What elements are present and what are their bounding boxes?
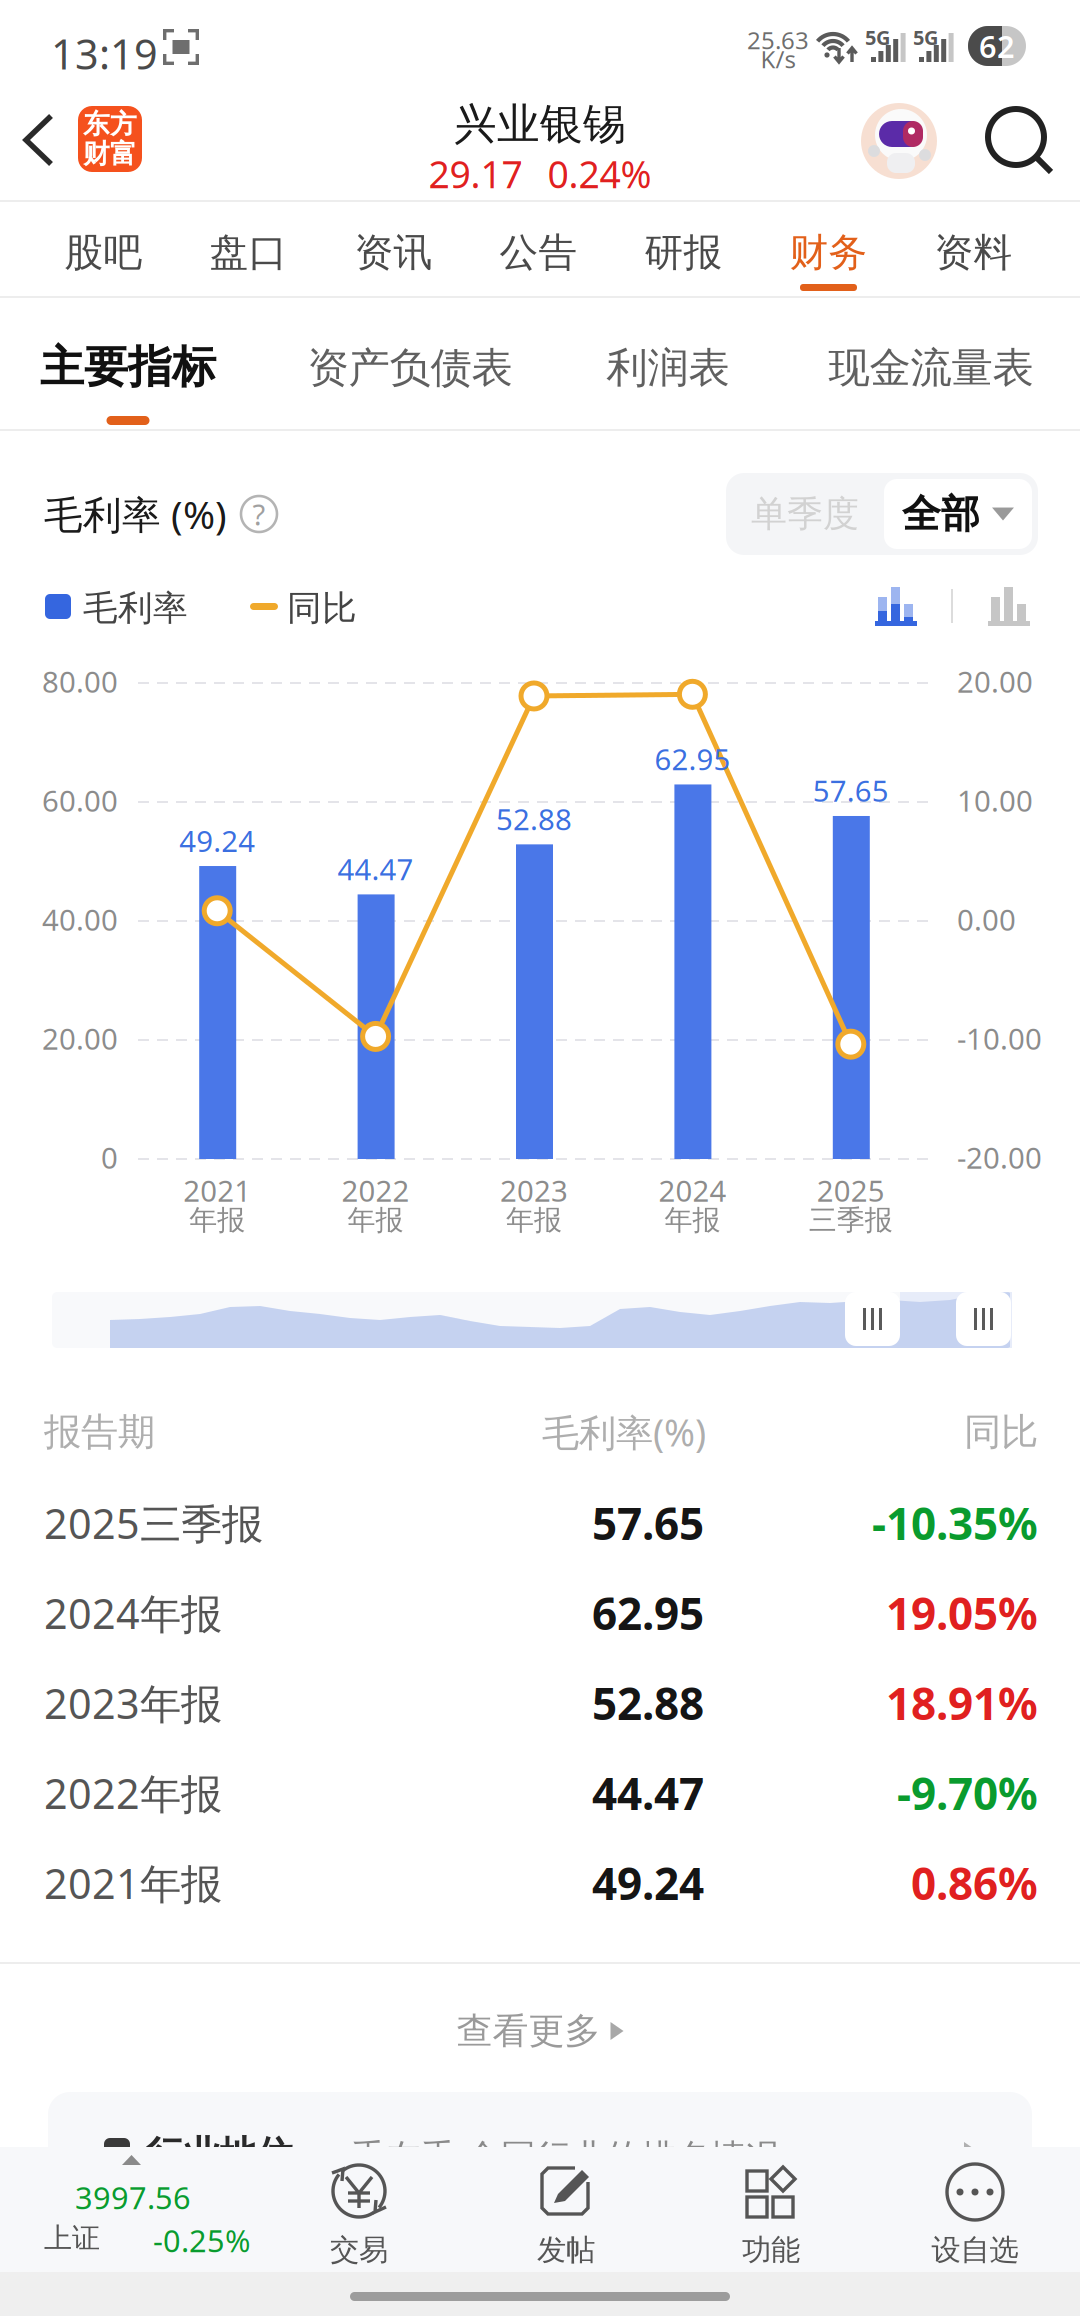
staticText: -20.00 [957, 1138, 1042, 1177]
staticText: 25.63 [747, 24, 809, 56]
staticText: 20.00 [957, 662, 1033, 701]
button[interactable]: Stacked bars [875, 585, 917, 627]
button[interactable]: East Money home [78, 106, 142, 172]
staticText: 10.00 [957, 781, 1033, 820]
staticText: 盘口 [209, 229, 287, 276]
staticText: 13:19 [51, 26, 158, 81]
staticText: 52.88 [496, 799, 572, 838]
button[interactable]: 设自选 [880, 2147, 1070, 2272]
button[interactable]: 全部 [884, 479, 1032, 549]
staticText: 57.65 [813, 771, 889, 810]
staticText: 功能 [742, 2232, 800, 2268]
staticText: 资产负债表 [307, 343, 512, 393]
button[interactable]: 主要指标 [13, 298, 243, 429]
staticText: 年报 [506, 1203, 562, 1237]
staticText: 行业地位 [146, 2132, 294, 2178]
staticText: 设自选 [931, 2232, 1018, 2268]
button[interactable]: AI assistant [853, 95, 945, 187]
staticText: 57.65 [592, 1494, 704, 1552]
staticText: 发帖 [537, 2232, 595, 2268]
button[interactable]: Range start [845, 1292, 900, 1346]
staticText: 62.95 [592, 1584, 704, 1642]
staticText: 29.17 [428, 149, 522, 199]
staticText: 上证 [44, 2221, 100, 2255]
button[interactable]: Search [975, 96, 1067, 188]
button[interactable]: 利润表 [583, 321, 753, 415]
staticText: 东方 [83, 108, 137, 140]
staticText: 80.00 [42, 662, 118, 701]
staticText: 全部 [902, 490, 980, 538]
staticText: K/s [760, 43, 795, 75]
staticText: 2024年报 [44, 1586, 222, 1640]
button[interactable]: 查看更多 [0, 1976, 1080, 2086]
staticText: 资讯 [354, 229, 432, 276]
button[interactable]: 财务 [756, 202, 901, 297]
button[interactable]: 资讯 [321, 202, 466, 297]
staticText: 年报 [664, 1203, 720, 1237]
staticText: 交易 [330, 2232, 388, 2268]
staticText: 报告期 [44, 1409, 155, 1455]
staticText: 主要指标 [40, 340, 216, 394]
staticText: 2023年报 [44, 1676, 222, 1730]
staticText: 0 [101, 1138, 118, 1177]
button[interactable]: 资料 [901, 202, 1046, 297]
staticText: 52.88 [592, 1674, 704, 1732]
staticText: 现金流量表 [828, 343, 1033, 393]
staticText: 5G [913, 24, 938, 51]
button[interactable]: 现金流量表 [801, 321, 1061, 415]
staticText: 三季报 [809, 1203, 893, 1237]
button[interactable]: 发帖 [471, 2147, 661, 2272]
button[interactable]: Back [0, 88, 78, 192]
staticText: 2021年报 [44, 1856, 222, 1910]
staticText: 0.86% [911, 1854, 1038, 1912]
staticText: 5G [865, 24, 890, 51]
button[interactable]: 公告 [466, 202, 611, 297]
button[interactable]: Range end [956, 1292, 1011, 1346]
staticText: -10.00 [957, 1019, 1042, 1058]
staticText: 同比 [287, 587, 357, 630]
staticText: 单季度 [751, 492, 859, 536]
staticText: 年报 [189, 1203, 245, 1237]
staticText: 3997.56 [75, 2177, 191, 2218]
staticText: 2023 [500, 1171, 568, 1210]
staticText: 股吧 [64, 229, 142, 276]
staticText: 2022 [342, 1171, 410, 1210]
staticText: 2025三季报 [44, 1496, 263, 1550]
staticText: 毛利率 [83, 587, 188, 630]
staticText: 公告 [499, 229, 577, 276]
staticText: 利润表 [606, 343, 729, 393]
button[interactable]: 交易 [264, 2147, 454, 2272]
staticText: 62 [979, 26, 1015, 66]
staticText: 18.91% [886, 1674, 1038, 1732]
staticText: -0.25% [153, 2220, 250, 2261]
staticText: 2024 [658, 1171, 726, 1210]
button[interactable]: 盘口 [176, 202, 321, 297]
staticText: 年报 [348, 1203, 404, 1237]
button[interactable]: 3997.56 [0, 2147, 268, 2271]
staticText: 44.47 [338, 849, 414, 888]
staticText: 44.47 [592, 1764, 704, 1822]
staticText: 毛利率 (%) [44, 488, 227, 540]
staticText: 0.24% [547, 149, 651, 199]
staticText: 财务 [789, 229, 867, 276]
staticText: 40.00 [42, 900, 118, 939]
button[interactable]: 功能 [676, 2147, 866, 2272]
button[interactable]: 单季度 [726, 473, 884, 555]
staticText: 0.00 [957, 900, 1016, 939]
staticText: 查看更多 [456, 2009, 600, 2053]
button[interactable]: 股吧 [31, 202, 176, 297]
staticText: 60.00 [42, 781, 118, 820]
button[interactable]: 资产负债表 [280, 321, 540, 415]
staticText: ? [252, 494, 265, 533]
staticText: -9.70% [897, 1764, 1038, 1822]
staticText: 研报 [644, 229, 722, 276]
staticText: 财富 [83, 137, 137, 170]
staticText: 2022年报 [44, 1766, 222, 1820]
staticText: 毛利率(%) [542, 1407, 706, 1457]
staticText: 同比 [964, 1409, 1038, 1455]
staticText: 兴业银锡 [454, 98, 626, 150]
button[interactable]: 研报 [611, 202, 756, 297]
button[interactable]: Plain bars [988, 585, 1030, 627]
staticText: -10.35% [872, 1494, 1038, 1552]
staticText: 49.24 [592, 1854, 704, 1912]
